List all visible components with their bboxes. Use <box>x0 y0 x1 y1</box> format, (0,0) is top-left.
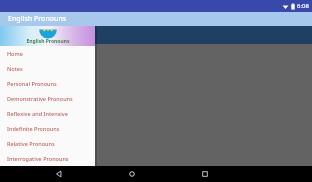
button[interactable]: Personal Pronouns <box>0 76 95 91</box>
button[interactable]: Home <box>0 46 95 61</box>
button[interactable]: Reflexive and Intensive <box>0 106 95 121</box>
button[interactable]: Interrogative Pronouns <box>0 151 95 166</box>
staticText: 6:08 <box>297 2 309 10</box>
staticText: Personal Pronouns <box>7 80 57 87</box>
button[interactable]: English Pronouns <box>0 26 95 46</box>
staticText: Reflexive and Intensive <box>7 110 68 117</box>
staticText: Indefinite Pronouns <box>7 125 60 132</box>
staticText: Relative Pronouns <box>7 140 55 147</box>
staticText: Notes <box>7 65 23 72</box>
button[interactable]: Notes <box>0 61 95 76</box>
button[interactable]: Indefinite Pronouns <box>0 121 95 136</box>
staticText: English Pronouns <box>8 14 67 24</box>
button[interactable]: Home <box>119 166 145 182</box>
button[interactable]: Relative Pronouns <box>0 136 95 151</box>
staticText: English Pronouns <box>26 38 70 45</box>
button[interactable] <box>95 26 312 166</box>
staticText: Home <box>7 50 23 57</box>
staticText: Interrogative Pronouns <box>7 155 69 162</box>
button[interactable]: Demonstrative Pronouns <box>0 91 95 106</box>
button[interactable]: Recent apps <box>192 166 218 182</box>
button[interactable]: Back <box>46 166 72 182</box>
staticText: Demonstrative Pronouns <box>7 95 73 102</box>
